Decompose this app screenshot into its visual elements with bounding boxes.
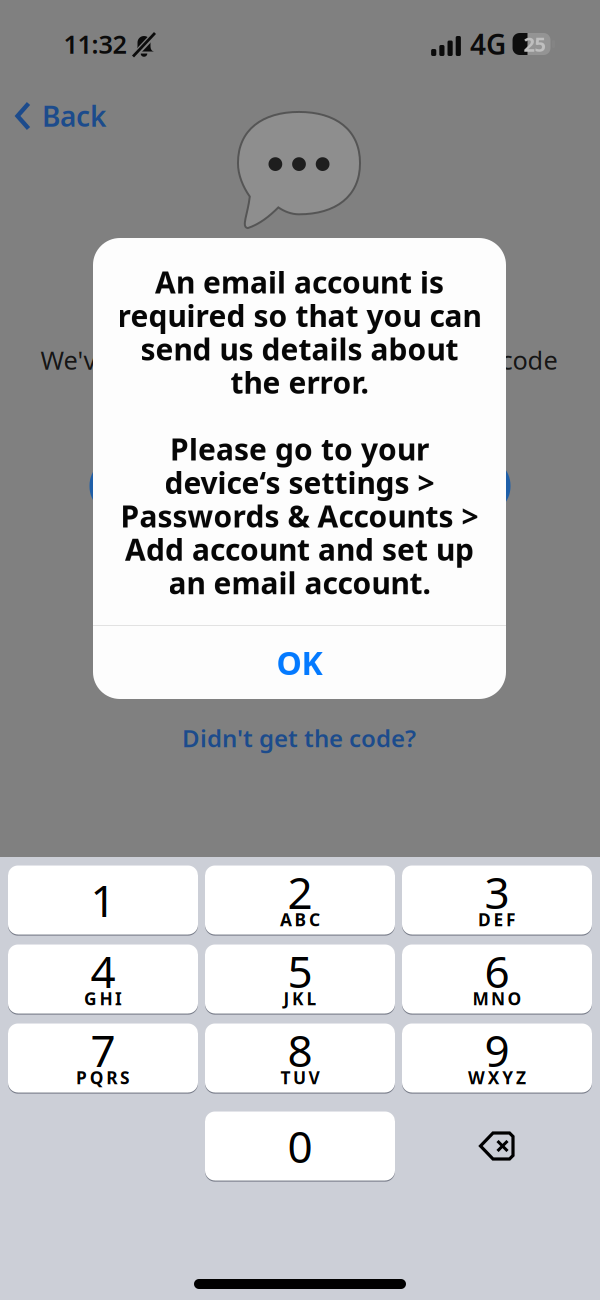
button[interactable]: Back — [0, 88, 150, 144]
button[interactable]: 6 — [402, 944, 592, 1013]
button[interactable]: 8 — [205, 1023, 395, 1092]
staticText: GHI — [84, 987, 122, 1010]
staticText: PQRS — [76, 1066, 130, 1089]
staticText: OK — [276, 641, 322, 684]
staticText: 3 — [484, 863, 509, 921]
staticText: DEF — [478, 908, 516, 931]
staticText: ABC — [280, 908, 320, 931]
staticText: WXYZ — [468, 1066, 526, 1089]
button[interactable]: Delete — [449, 1113, 545, 1179]
staticText: An email account is — [155, 262, 444, 302]
staticText: 0 — [287, 1117, 312, 1175]
staticText: 4 — [90, 942, 115, 1000]
staticText: We've sent you an email with a 6-digit c… — [40, 343, 557, 377]
staticText: Add account and set up — [125, 529, 474, 570]
staticText: 11:32 — [63, 27, 126, 61]
button[interactable]: 3 — [402, 865, 592, 934]
staticText: MNO — [472, 987, 522, 1010]
staticText: 7 — [90, 1021, 115, 1079]
staticText: 4G — [470, 25, 506, 63]
button[interactable]: 7 — [8, 1023, 198, 1092]
staticText: JKL — [283, 987, 317, 1010]
staticText: send us details about — [140, 328, 458, 369]
staticText: 5 — [287, 942, 312, 1000]
staticText: Passwords & Accounts > — [120, 495, 478, 536]
staticText: device‘s settings > — [164, 462, 434, 503]
staticText: Didn't get the code? — [182, 722, 416, 754]
button[interactable]: 9 — [402, 1023, 592, 1092]
staticText: 1 — [90, 871, 115, 929]
staticText: 25 — [523, 30, 545, 58]
button[interactable]: 4 — [8, 944, 198, 1013]
staticText: an email account. — [168, 562, 430, 603]
staticText: 9 — [484, 1021, 509, 1079]
staticText: required so that you can — [117, 295, 481, 336]
staticText: the error. — [230, 362, 368, 403]
staticText: 2 — [287, 863, 312, 921]
staticText: 8 — [287, 1021, 312, 1079]
button[interactable]: 1 — [8, 865, 198, 934]
button[interactable]: 2 — [205, 865, 395, 934]
staticText: TUV — [280, 1066, 320, 1089]
button[interactable]: Didn't get the code? — [129, 713, 469, 763]
staticText: 6 — [484, 942, 509, 1000]
staticText: Back — [42, 97, 106, 135]
button[interactable]: 5 — [205, 944, 395, 1013]
button[interactable]: OK — [93, 626, 506, 699]
button[interactable]: 0 — [205, 1111, 395, 1180]
staticText: Please go to your — [170, 429, 429, 469]
